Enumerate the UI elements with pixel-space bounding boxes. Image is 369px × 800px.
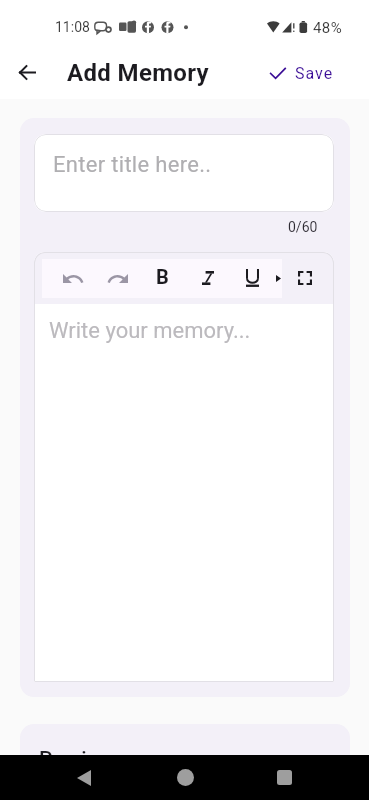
button[interactable]: Underline [230,259,275,298]
button[interactable]: Save [264,55,340,91]
staticText: Add Memory [67,59,210,87]
button[interactable]: Enter title here.. [34,134,334,212]
staticText: B [156,265,169,288]
button[interactable]: Redo [95,259,140,298]
button[interactable]: Preview [20,724,350,794]
staticText: 0/60 [288,219,318,235]
staticText: Preview [39,747,114,772]
other: More [276,275,281,282]
button[interactable]: Recent apps [263,755,305,800]
button[interactable]: Back [63,755,105,800]
staticText: 11:08 [55,19,90,35]
button[interactable]: Back [9,55,44,90]
button[interactable]: Home [164,755,206,800]
button[interactable]: Bold [140,259,185,298]
button[interactable]: Italic [185,259,230,298]
staticText: Save [295,64,334,83]
button[interactable]: Fullscreen [291,264,319,292]
button[interactable]: Undo [50,259,95,298]
staticText: 48% [313,19,343,37]
staticText: Enter title here.. [53,152,212,178]
button[interactable]: Write your memory... [34,305,334,682]
staticText: Write your memory... [49,318,251,344]
